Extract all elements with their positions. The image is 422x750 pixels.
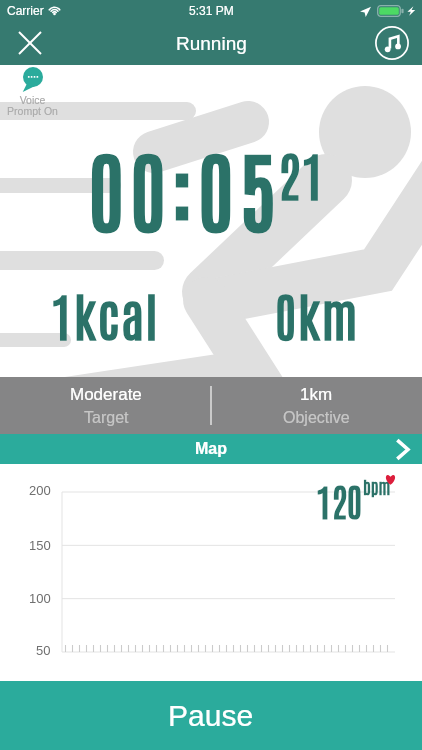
button[interactable]: Music — [370, 21, 414, 65]
staticText: Moderate — [70, 385, 142, 404]
button[interactable]: Close — [8, 21, 52, 65]
staticText: bpm — [363, 475, 391, 497]
staticText: 00:05 — [88, 129, 281, 243]
staticText: Carrier — [7, 4, 44, 17]
staticText: 21 — [278, 139, 326, 208]
staticText: 1km — [300, 385, 333, 404]
staticText: Voice Prompt On — [7, 94, 58, 117]
staticText: 5:31 PM — [189, 4, 234, 17]
staticText: 100 — [29, 591, 51, 606]
staticText: 150 — [29, 538, 51, 553]
staticText: Objective — [283, 409, 350, 427]
staticText: 50 — [36, 643, 51, 658]
button[interactable]: Pause — [0, 681, 422, 750]
staticText: 120 — [316, 476, 363, 524]
staticText: 0km — [275, 281, 359, 347]
staticText: Pause — [168, 699, 254, 733]
button[interactable]: Map — [0, 434, 422, 464]
staticText: Map — [195, 440, 227, 458]
staticText: Running — [176, 33, 247, 54]
staticText: 1kcal — [51, 281, 160, 347]
button[interactable]: 1km — [211, 377, 422, 434]
button[interactable]: Moderate — [0, 377, 211, 434]
staticText: Target — [84, 409, 129, 427]
staticText: 200 — [29, 483, 51, 498]
